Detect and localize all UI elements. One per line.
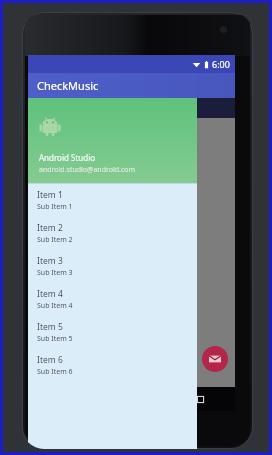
button[interactable]: Item 2 — [28, 217, 197, 250]
staticText: android.studio@android.com — [39, 165, 136, 175]
staticText: Sub Item 2 — [37, 235, 73, 245]
staticText: Item 6 — [37, 354, 63, 366]
button[interactable]: CheckMusic — [28, 73, 235, 98]
staticText: Sub Item 5 — [37, 334, 73, 344]
staticText: Item 2 — [37, 222, 63, 234]
staticText: Sub Item 3 — [37, 268, 73, 278]
staticText: Item 4 — [37, 288, 63, 300]
button[interactable]: Recent apps — [166, 387, 235, 411]
staticText: Sub Item 4 — [37, 301, 73, 311]
staticText: CheckMusic — [37, 78, 99, 93]
button[interactable]: Item 4 — [28, 283, 197, 316]
staticText: Android Studio — [39, 152, 96, 163]
staticText: Item 5 — [37, 321, 63, 333]
button[interactable]: Item 5 — [28, 316, 197, 349]
staticText: 6:00 — [212, 58, 230, 70]
button[interactable]: Compose email — [202, 346, 228, 372]
button[interactable]: Item 1 — [28, 184, 197, 217]
button[interactable]: Item 3 — [28, 250, 197, 283]
staticText: Item 1 — [37, 189, 63, 201]
staticText: Sub Item 1 — [37, 202, 73, 212]
staticText: Sub Item 6 — [37, 367, 73, 377]
button[interactable]: Item 6 — [28, 349, 197, 382]
staticText: Item 3 — [37, 255, 63, 267]
